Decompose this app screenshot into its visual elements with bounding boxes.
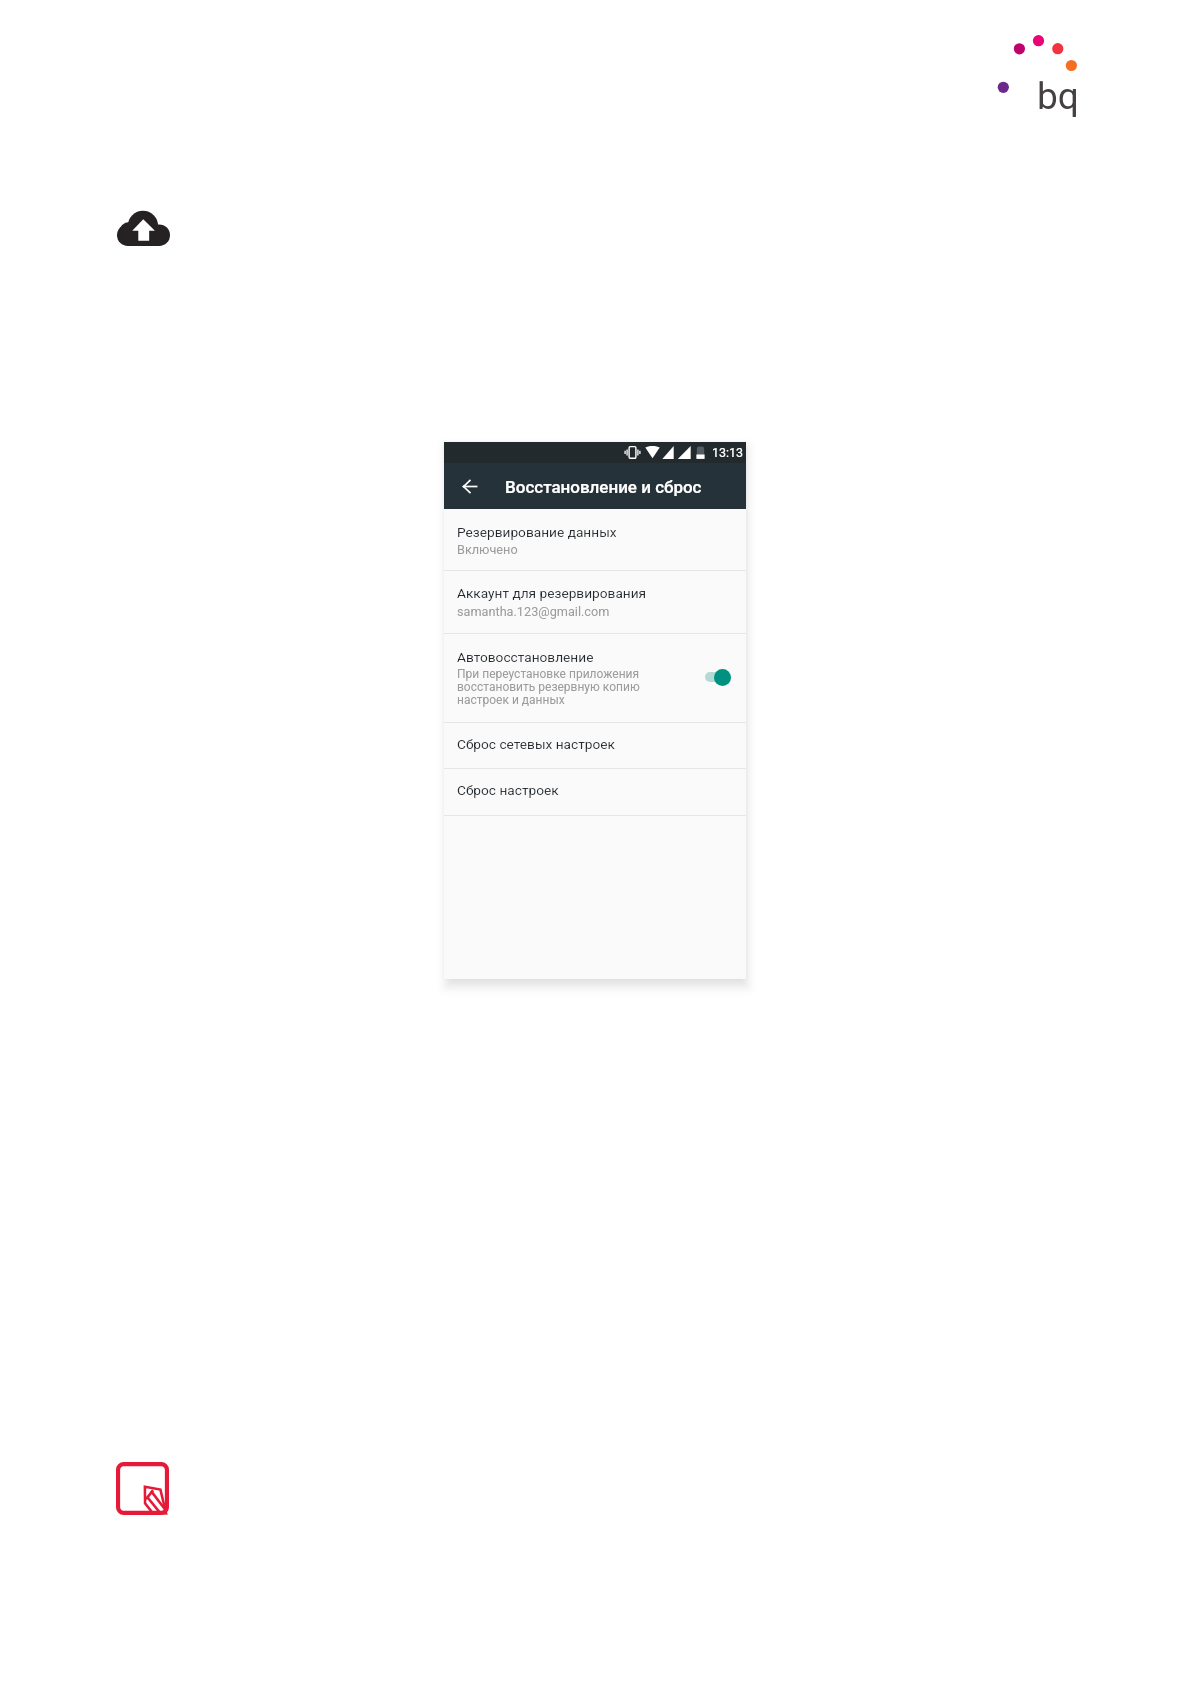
button[interactable]: Аккаунт для резервирования	[444, 571, 746, 633]
button[interactable]: Резервирование данных	[444, 509, 746, 570]
staticText: Резервирование данных	[457, 524, 617, 540]
staticText: samantha.123@gmail.com	[457, 604, 610, 619]
other: Cloud upload	[117, 210, 170, 246]
staticText: Сброс сетевых настроек	[457, 736, 615, 752]
staticText: bq	[1037, 75, 1079, 118]
staticText: Аккаунт для резервирования	[457, 585, 647, 601]
button[interactable]: Back	[450, 466, 490, 506]
other: Edit note	[116, 1462, 169, 1515]
button[interactable]: Сброс настроек	[444, 769, 746, 815]
button[interactable]: Сброс сетевых настроек	[444, 723, 746, 768]
staticText: 13:13	[712, 445, 744, 460]
staticText: Автовосстановление	[457, 649, 594, 665]
button[interactable]: Автовосстановление	[444, 634, 746, 722]
staticText: Сброс настроек	[457, 782, 559, 798]
button[interactable]: Auto restore toggle	[696, 660, 740, 696]
staticText: При переустановке приложения восстановит…	[457, 667, 641, 707]
staticText: Включено	[457, 542, 518, 557]
staticText: Восстановление и сброс	[505, 477, 702, 497]
